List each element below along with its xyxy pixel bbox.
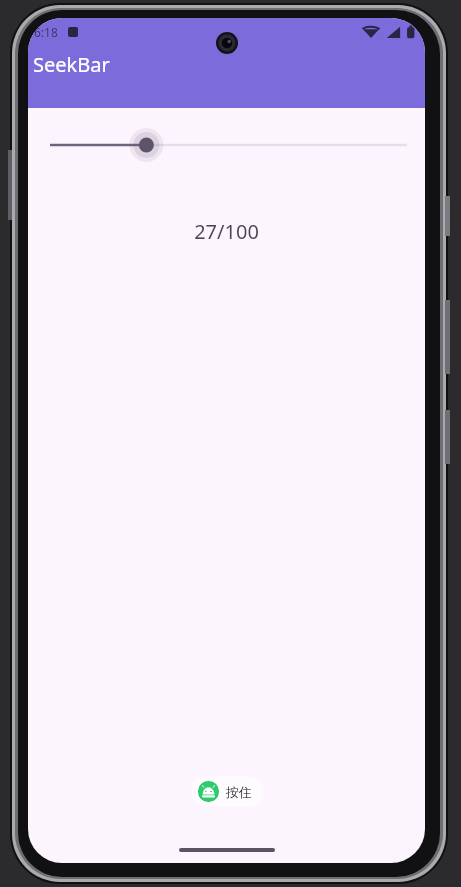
staticText: 27/100 — [28, 218, 425, 245]
button[interactable] — [28, 122, 425, 168]
other: Android assistant — [198, 781, 219, 802]
button[interactable]: Android assistant — [191, 776, 263, 807]
staticText: 6:18 — [34, 24, 58, 40]
staticText: 按住 — [226, 784, 252, 800]
staticText: SeekBar — [33, 51, 110, 78]
